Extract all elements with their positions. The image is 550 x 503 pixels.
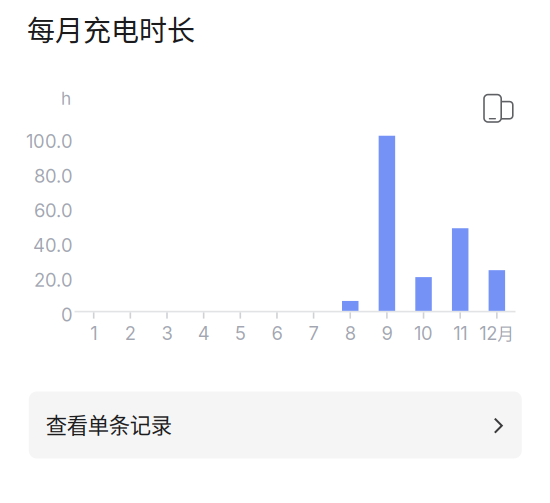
staticText: 60.0	[34, 199, 73, 222]
staticText: 每月充电时长	[27, 8, 195, 49]
staticText: 5	[235, 322, 246, 344]
staticText: 0	[61, 304, 73, 326]
staticText: 1	[90, 322, 97, 344]
staticText: 3	[161, 322, 172, 344]
staticText: 12	[479, 322, 497, 344]
button[interactable]: 查看单条记录	[29, 391, 522, 458]
staticText: 100.0	[26, 130, 73, 152]
button[interactable]: Rotate screen	[484, 95, 524, 129]
staticText: 20.0	[34, 269, 73, 291]
staticText: 7	[309, 322, 319, 344]
staticText: 查看单条记录	[46, 408, 172, 439]
staticText: 11	[453, 322, 467, 344]
staticText: 月	[497, 321, 514, 345]
staticText: 4	[198, 322, 210, 344]
staticText: 80.0	[34, 165, 73, 187]
staticText: 9	[381, 322, 392, 344]
staticText: 10	[414, 322, 433, 344]
staticText: 40.0	[33, 234, 73, 256]
staticText: h	[61, 88, 71, 109]
staticText: 8	[345, 322, 356, 344]
staticText: 6	[271, 322, 282, 344]
staticText: 2	[125, 322, 136, 344]
